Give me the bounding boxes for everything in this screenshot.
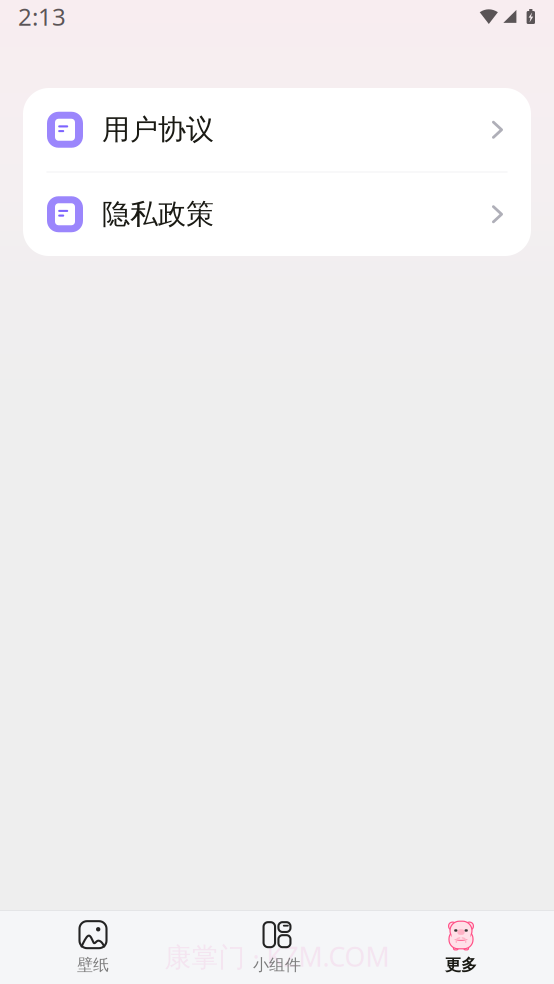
button[interactable]: 更多 (411, 911, 511, 984)
staticText: 小组件 (253, 955, 301, 975)
staticText: 壁纸 (77, 955, 109, 975)
staticText: 更多 (445, 955, 477, 975)
button[interactable]: 隐私政策 (23, 172, 531, 256)
staticText: 康掌门 · KZM.COM (164, 939, 389, 974)
button[interactable]: 壁纸 (43, 911, 143, 984)
staticText: 2:13 (18, 1, 66, 32)
staticText: 隐私政策 (102, 197, 214, 231)
button[interactable]: 小组件 (227, 911, 327, 984)
button[interactable]: 用户协议 (23, 88, 531, 171)
staticText: 用户协议 (102, 113, 214, 147)
